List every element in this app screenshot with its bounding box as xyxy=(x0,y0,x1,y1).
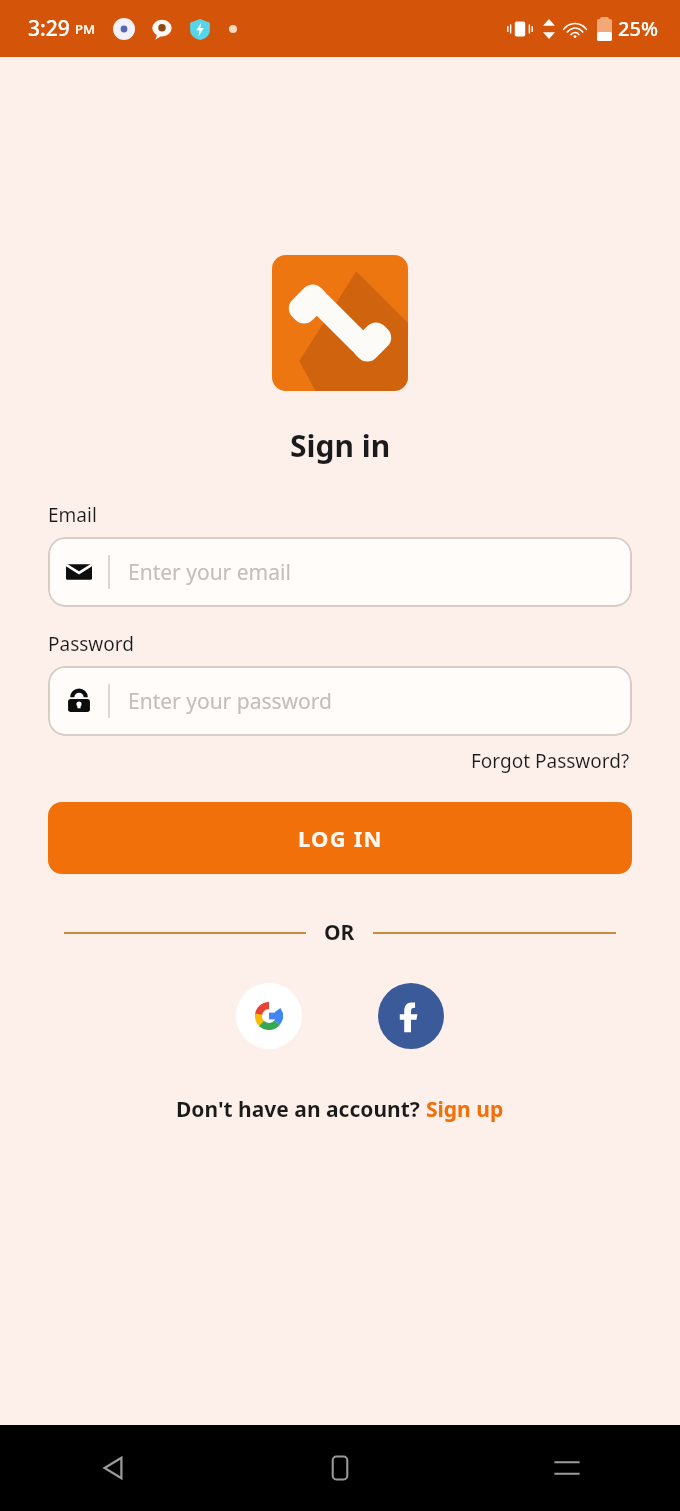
button[interactable]: Don't have an account? xyxy=(170,1091,510,1128)
staticText: Email xyxy=(48,502,97,528)
staticText: LOG IN xyxy=(298,823,383,853)
button[interactable]: Home xyxy=(226,1425,453,1511)
button[interactable]: Enter your password xyxy=(48,666,632,736)
button[interactable]: Back xyxy=(0,1425,226,1511)
button[interactable]: Enter your email xyxy=(48,537,632,607)
button[interactable]: Sign in with Facebook xyxy=(378,983,444,1049)
staticText: 25% xyxy=(618,15,658,42)
staticText: Enter your email xyxy=(128,558,291,587)
staticText: Don't have an account? xyxy=(176,1095,426,1124)
staticText: PM xyxy=(75,20,95,38)
staticText: 3:29 xyxy=(28,14,70,43)
staticText: Sign in xyxy=(290,425,391,466)
button[interactable]: Sign in with Google xyxy=(236,983,302,1049)
staticText: Sign up xyxy=(426,1095,504,1124)
staticText: Password xyxy=(48,631,134,657)
button[interactable]: Recent apps xyxy=(453,1425,680,1511)
button[interactable]: Forgot Password? xyxy=(469,746,632,776)
button[interactable]: LOG IN xyxy=(48,802,632,874)
staticText: Enter your password xyxy=(128,687,332,716)
staticText: OR xyxy=(324,918,355,947)
